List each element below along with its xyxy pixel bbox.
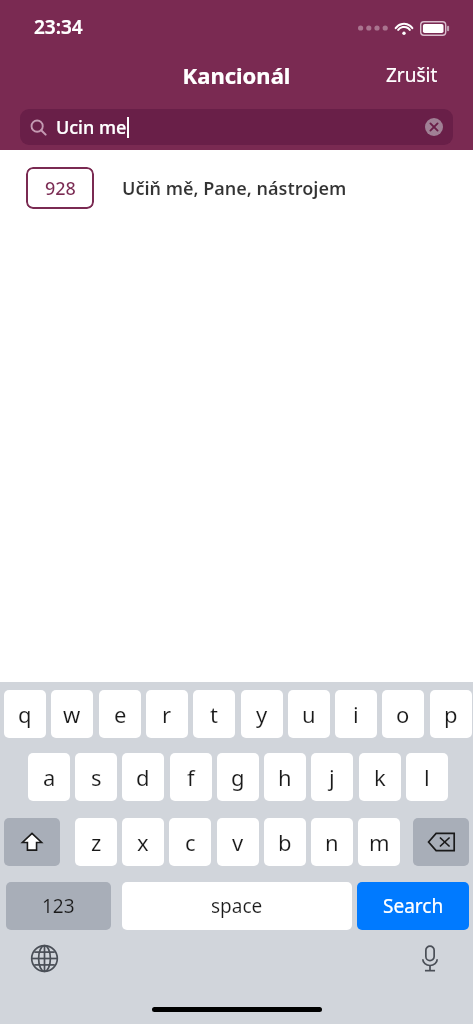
button[interactable]: b	[264, 818, 306, 866]
staticText: x	[137, 827, 149, 857]
button[interactable]: i	[335, 690, 377, 738]
button[interactable]: j	[311, 753, 353, 801]
staticText: e	[114, 699, 127, 729]
staticText: z	[91, 827, 102, 857]
staticText: k	[374, 762, 386, 792]
staticText: h	[278, 762, 292, 792]
staticText: j	[329, 762, 335, 792]
staticText: Ucin me	[56, 115, 127, 140]
staticText: o	[396, 699, 410, 729]
button[interactable]: v	[217, 818, 259, 866]
button[interactable]: q	[4, 690, 46, 738]
button[interactable]: u	[288, 690, 330, 738]
staticText: c	[185, 827, 196, 857]
staticText: i	[353, 699, 359, 729]
staticText: m	[369, 827, 390, 857]
staticText: n	[325, 827, 339, 857]
button[interactable]: n	[311, 818, 353, 866]
staticText: p	[444, 699, 458, 729]
button[interactable]: z	[75, 818, 117, 866]
button[interactable]: Search	[357, 882, 469, 930]
button[interactable]: e	[99, 690, 141, 738]
staticText: 928	[45, 176, 76, 201]
staticText: Zrušit	[386, 62, 438, 88]
staticText: d	[136, 762, 150, 792]
staticText: w	[63, 699, 81, 729]
button[interactable]: d	[122, 753, 164, 801]
staticText: t	[210, 699, 218, 729]
staticText: l	[424, 762, 430, 792]
button[interactable]: p	[430, 690, 472, 738]
button[interactable]: l	[406, 753, 448, 801]
button[interactable]: c	[169, 818, 211, 866]
button[interactable]: Change keyboard language	[26, 940, 63, 977]
button[interactable]: 928	[0, 150, 473, 250]
staticText: y	[256, 699, 268, 729]
button[interactable]: o	[382, 690, 424, 738]
button[interactable]: space	[122, 882, 352, 930]
button[interactable]: h	[264, 753, 306, 801]
staticText: b	[278, 827, 292, 857]
button[interactable]: Ucin me	[20, 109, 453, 145]
button[interactable]: g	[217, 753, 259, 801]
staticText: f	[187, 762, 195, 792]
button[interactable]: k	[359, 753, 401, 801]
button[interactable]: y	[241, 690, 283, 738]
button[interactable]: s	[75, 753, 117, 801]
staticText: g	[231, 762, 245, 792]
staticText: s	[91, 762, 102, 792]
staticText: 123	[42, 893, 75, 919]
staticText: v	[232, 827, 244, 857]
button[interactable]: Backspace	[413, 818, 469, 866]
button[interactable]: Dictate	[411, 940, 448, 977]
button[interactable]: m	[358, 818, 400, 866]
staticText: Kancionál	[0, 60, 473, 90]
button[interactable]: t	[193, 690, 235, 738]
button[interactable]: 123	[6, 882, 111, 930]
staticText: Search	[383, 893, 444, 919]
staticText: q	[18, 699, 32, 729]
staticText: Učiň mě, Pane, nástrojem	[122, 176, 347, 201]
staticText: 23:34	[34, 14, 83, 40]
button[interactable]: r	[146, 690, 188, 738]
staticText: u	[302, 699, 316, 729]
button[interactable]: Zrušit	[384, 60, 440, 90]
button[interactable]: a	[28, 753, 70, 801]
button[interactable]: Shift	[4, 818, 60, 866]
button[interactable]: x	[122, 818, 164, 866]
staticText: a	[43, 762, 56, 792]
button[interactable]: f	[170, 753, 212, 801]
button[interactable]: w	[51, 690, 93, 738]
staticText: r	[162, 699, 172, 729]
button[interactable]: Clear search	[425, 118, 443, 136]
staticText: space	[211, 893, 263, 919]
